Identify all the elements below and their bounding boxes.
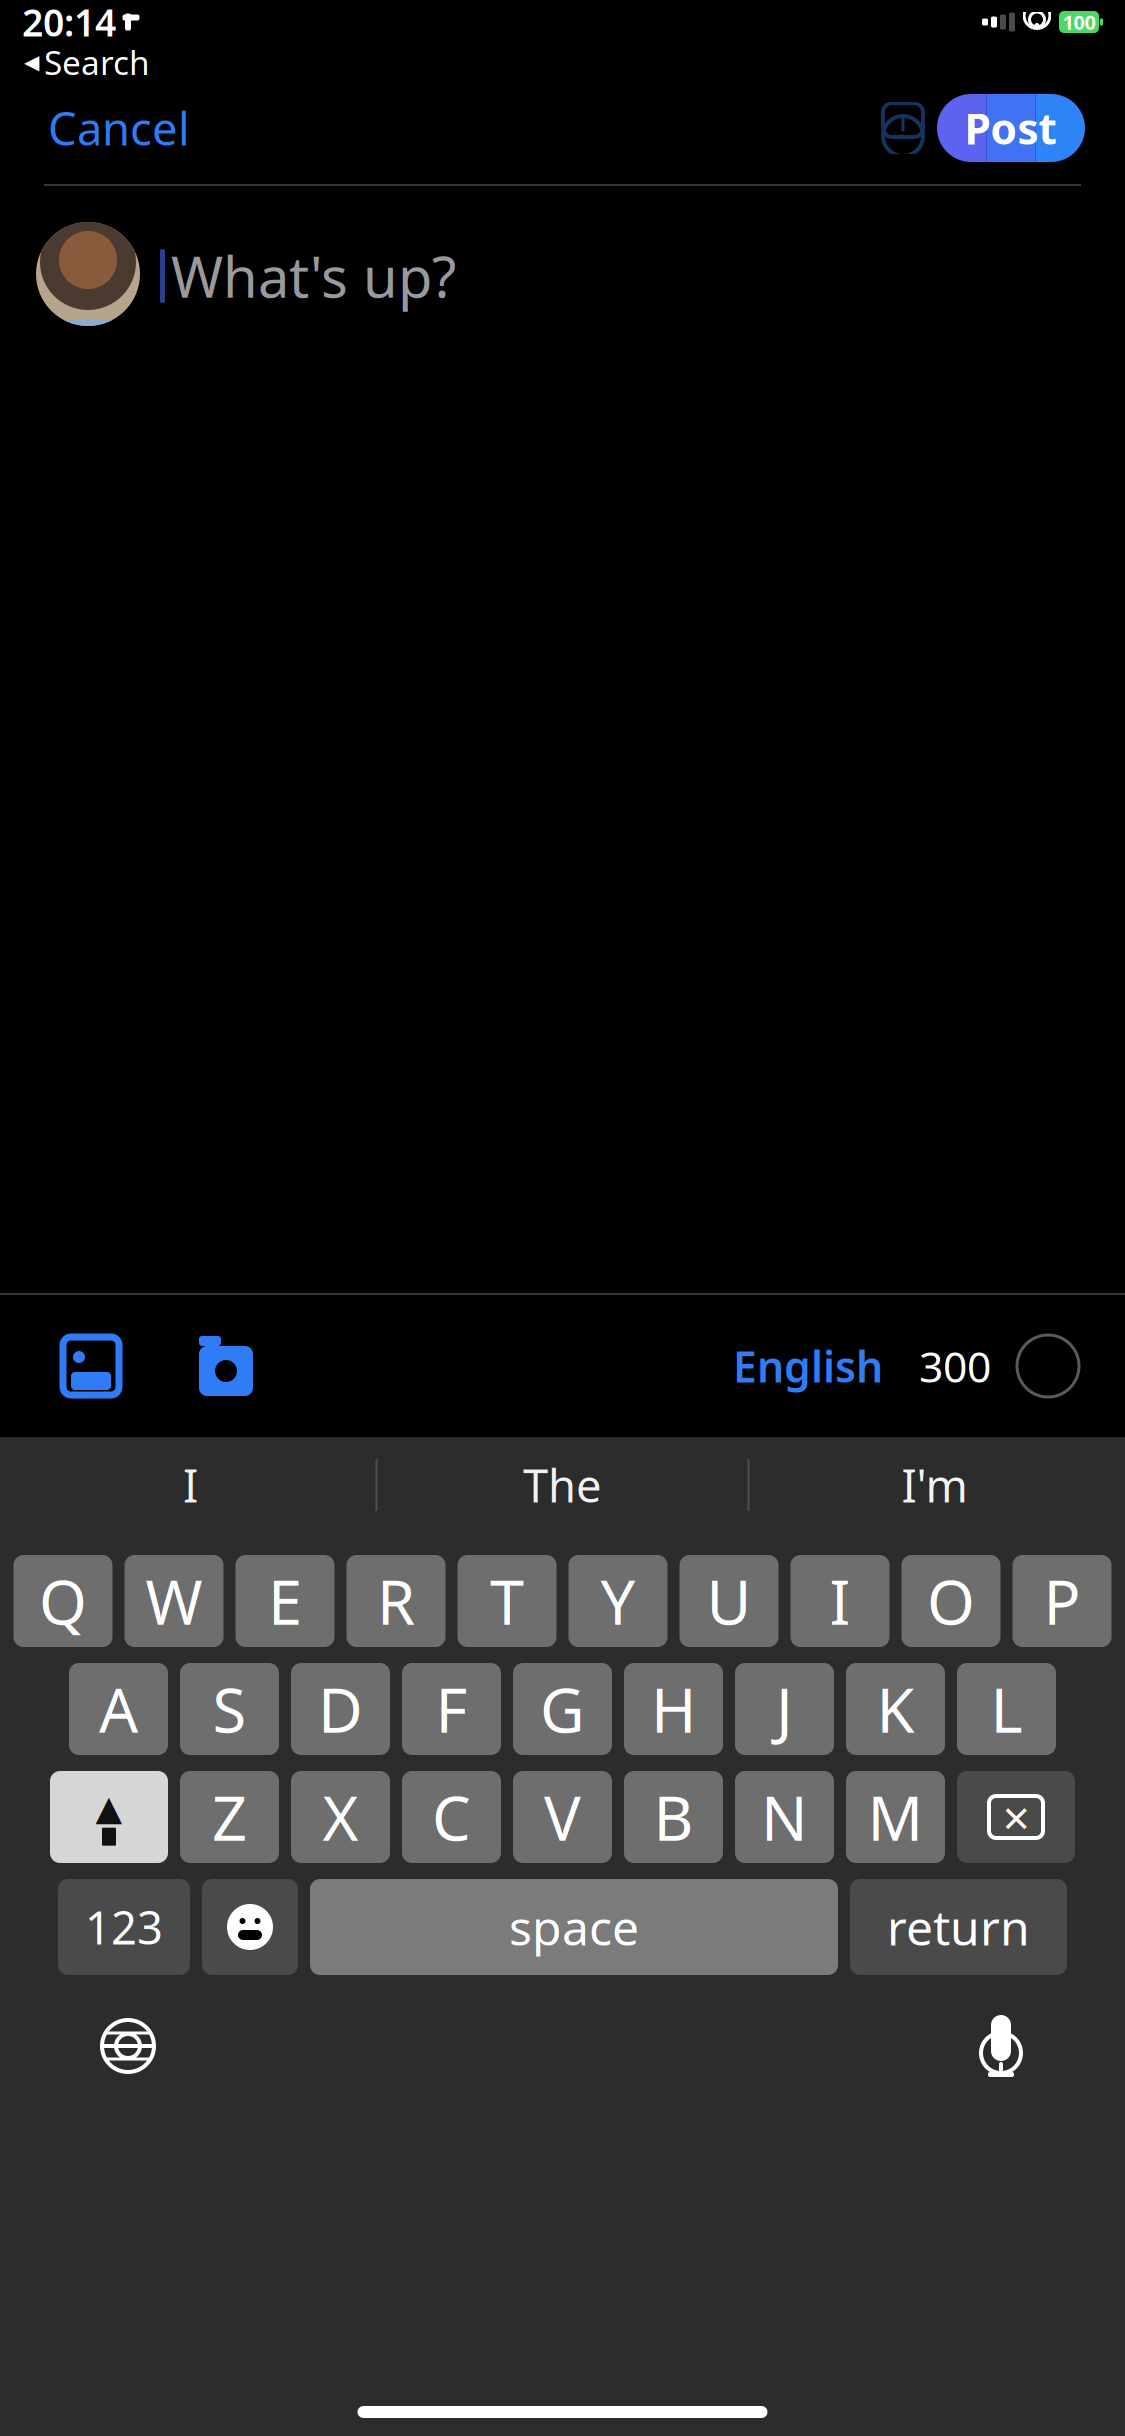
button[interactable]: K bbox=[846, 1663, 945, 1755]
button[interactable]: Add photo bbox=[42, 1325, 140, 1407]
staticText: B bbox=[653, 1776, 693, 1858]
staticText: 123 bbox=[85, 1897, 163, 1957]
staticText: H bbox=[651, 1668, 696, 1750]
button[interactable]: Character progress bbox=[991, 1335, 1083, 1397]
staticText: U bbox=[706, 1560, 751, 1642]
staticText: S bbox=[212, 1668, 246, 1750]
button[interactable]: Delete bbox=[957, 1771, 1075, 1863]
staticText: What's up? bbox=[171, 239, 456, 313]
button[interactable]: English bbox=[725, 1330, 891, 1402]
staticText: 300 bbox=[919, 1338, 991, 1394]
staticText: Z bbox=[212, 1776, 247, 1858]
button[interactable]: space bbox=[310, 1879, 838, 1975]
button[interactable]: P bbox=[1012, 1555, 1111, 1647]
staticText: The bbox=[523, 1455, 602, 1515]
button[interactable]: R bbox=[346, 1555, 445, 1647]
staticText: I bbox=[183, 1455, 198, 1515]
staticText: Cancel bbox=[48, 98, 190, 158]
staticText: O bbox=[927, 1560, 975, 1642]
staticText: 20:14 bbox=[22, 0, 116, 47]
button[interactable]: S bbox=[180, 1663, 279, 1755]
staticText: return bbox=[887, 1895, 1030, 1959]
button[interactable]: Content warning bbox=[869, 101, 937, 155]
button[interactable]: C bbox=[402, 1771, 501, 1863]
button[interactable]: Take photo bbox=[178, 1325, 274, 1407]
button[interactable]: Dictate bbox=[959, 1995, 1043, 2097]
staticText: J bbox=[776, 1668, 793, 1750]
button[interactable]: E bbox=[235, 1555, 334, 1647]
button[interactable]: Emoji bbox=[202, 1879, 298, 1975]
staticText: I'm bbox=[901, 1455, 967, 1515]
button[interactable]: ◀ bbox=[12, 38, 162, 86]
button[interactable]: B bbox=[624, 1771, 723, 1863]
staticText: F bbox=[435, 1668, 467, 1750]
staticText: V bbox=[544, 1776, 581, 1858]
staticText: I bbox=[829, 1560, 850, 1642]
button[interactable]: Cancel bbox=[34, 90, 204, 166]
staticText: X bbox=[322, 1776, 358, 1858]
staticText: Y bbox=[600, 1560, 635, 1642]
staticText: × bbox=[1002, 1785, 1029, 1849]
staticText: L bbox=[990, 1668, 1022, 1750]
staticText: A bbox=[99, 1668, 138, 1750]
staticText: G bbox=[540, 1668, 585, 1750]
button[interactable]: Q bbox=[13, 1555, 112, 1647]
button[interactable]: F bbox=[402, 1663, 501, 1755]
staticText: R bbox=[377, 1560, 415, 1642]
staticText: W bbox=[145, 1560, 202, 1642]
button[interactable]: T bbox=[457, 1555, 556, 1647]
staticText: English bbox=[733, 1338, 883, 1394]
staticText: Search bbox=[44, 40, 150, 84]
button[interactable]: Switch keyboard bbox=[82, 2000, 174, 2092]
button[interactable]: U bbox=[679, 1555, 778, 1647]
button[interactable]: The bbox=[377, 1437, 747, 1533]
staticText: Post bbox=[964, 100, 1057, 156]
staticText: E bbox=[268, 1560, 302, 1642]
button[interactable]: O bbox=[901, 1555, 1000, 1647]
button[interactable]: X bbox=[291, 1771, 390, 1863]
button[interactable]: I'm bbox=[749, 1437, 1119, 1533]
button[interactable]: M bbox=[846, 1771, 945, 1863]
staticText: C bbox=[432, 1776, 471, 1858]
button[interactable]: Y bbox=[568, 1555, 667, 1647]
button[interactable]: Z bbox=[180, 1771, 279, 1863]
button[interactable]: N bbox=[735, 1771, 834, 1863]
button[interactable]: I bbox=[790, 1555, 889, 1647]
staticText: K bbox=[876, 1668, 914, 1750]
button[interactable]: Post bbox=[937, 94, 1085, 162]
button[interactable]: H bbox=[624, 1663, 723, 1755]
button[interactable]: W bbox=[124, 1555, 223, 1647]
button[interactable]: G bbox=[513, 1663, 612, 1755]
staticText: ◀ bbox=[24, 51, 39, 73]
button[interactable]: J bbox=[735, 1663, 834, 1755]
staticText: space bbox=[509, 1895, 639, 1959]
staticText: P bbox=[1043, 1560, 1080, 1642]
button[interactable]: 123 bbox=[58, 1879, 190, 1975]
button[interactable]: D bbox=[291, 1663, 390, 1755]
button[interactable]: L bbox=[957, 1663, 1056, 1755]
button[interactable]: I bbox=[5, 1437, 375, 1533]
staticText: M bbox=[867, 1776, 923, 1858]
staticText: T bbox=[490, 1560, 524, 1642]
button[interactable]: A bbox=[69, 1663, 168, 1755]
staticText: N bbox=[761, 1776, 808, 1858]
button[interactable]: Shift bbox=[50, 1771, 168, 1863]
staticText: 100 bbox=[1062, 9, 1095, 35]
staticText: ▲ bbox=[95, 1788, 122, 1828]
button[interactable]: V bbox=[513, 1771, 612, 1863]
staticText: Q bbox=[39, 1560, 87, 1642]
button[interactable]: return bbox=[850, 1879, 1067, 1975]
staticText: D bbox=[318, 1668, 363, 1750]
